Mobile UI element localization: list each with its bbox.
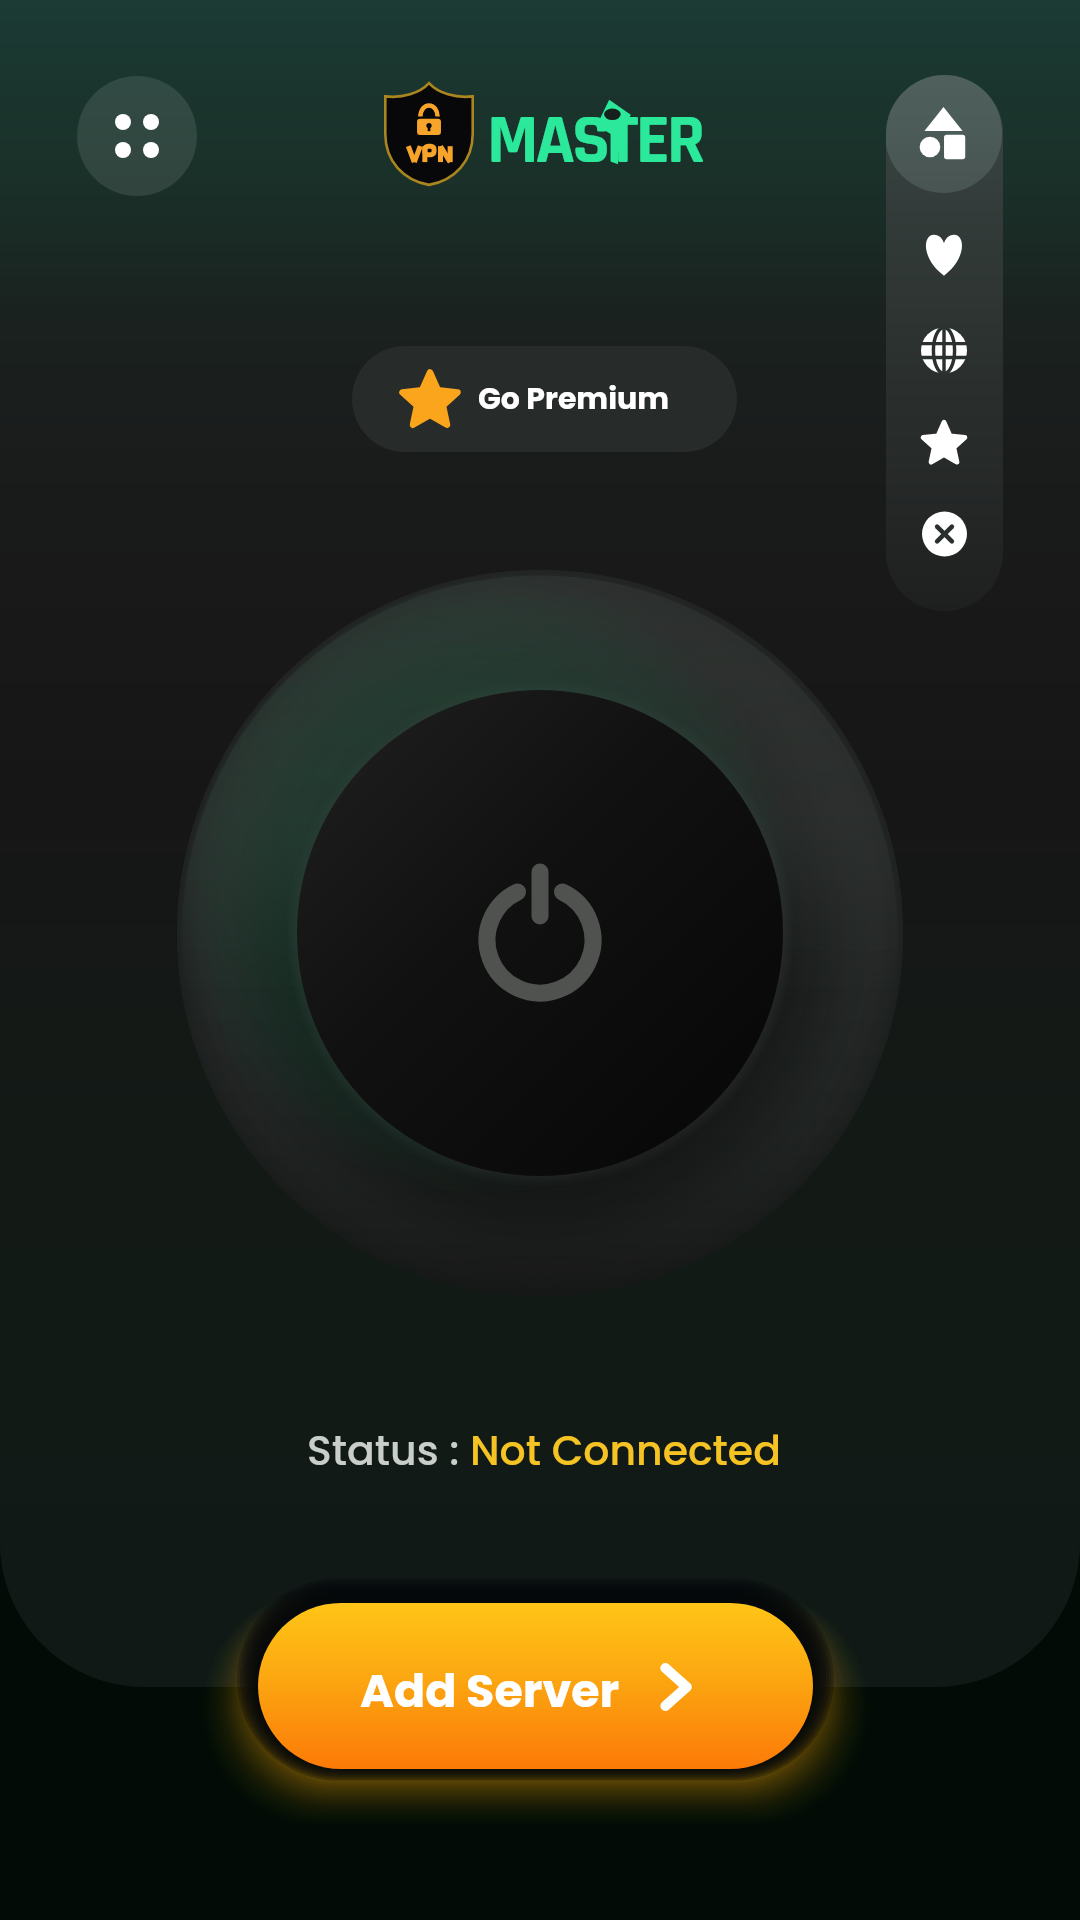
button[interactable]: Connect bbox=[177, 570, 903, 1296]
button[interactable]: Rate us bbox=[922, 420, 966, 465]
button[interactable]: Categories bbox=[886, 75, 1002, 193]
staticText: MASTER bbox=[487, 96, 703, 187]
button[interactable]: Favorites bbox=[921, 231, 967, 278]
button[interactable]: Exit bbox=[922, 511, 967, 557]
button[interactable]: Go Premium bbox=[352, 346, 737, 452]
staticText: Add Server bbox=[360, 1659, 620, 1723]
staticText: Status : bbox=[307, 1422, 470, 1479]
staticText: Not Connected bbox=[470, 1422, 781, 1479]
button[interactable]: Servers bbox=[921, 327, 967, 374]
staticText: Go Premium bbox=[478, 378, 669, 420]
button[interactable]: Add Server bbox=[258, 1603, 813, 1769]
button[interactable]: Menu bbox=[77, 76, 197, 196]
